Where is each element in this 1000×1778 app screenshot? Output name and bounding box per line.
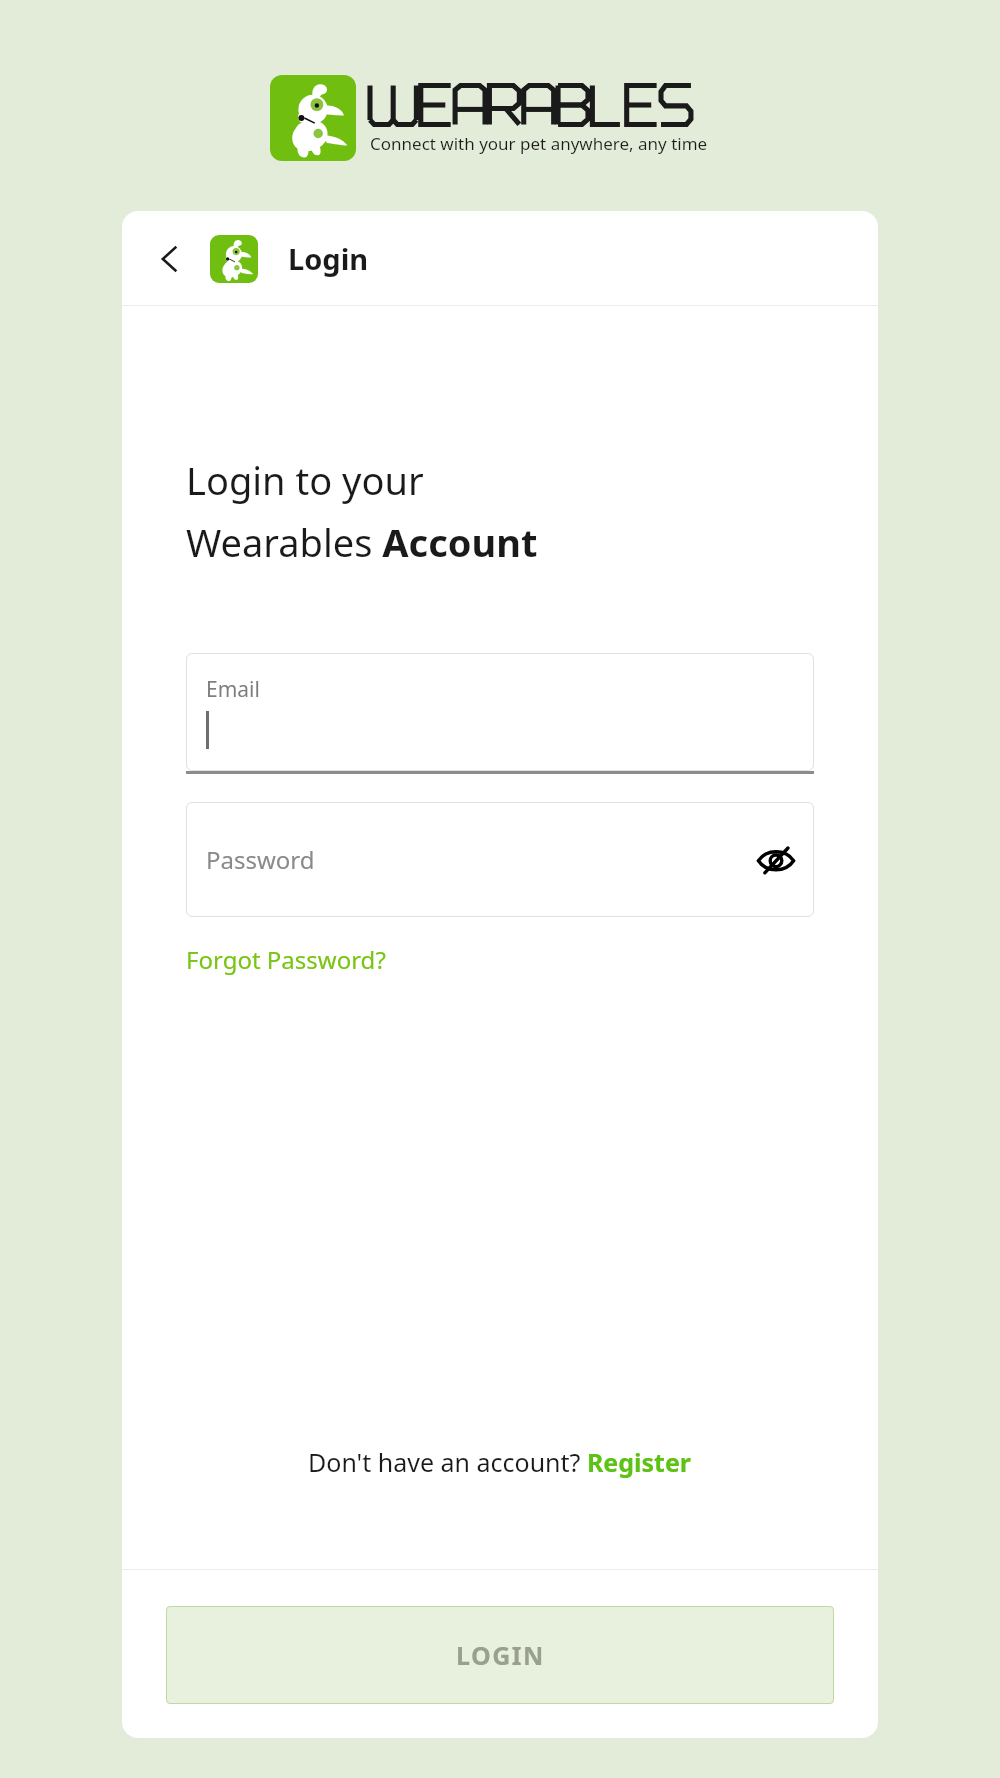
staticText: Email [206,675,260,704]
button[interactable]: LOGIN [166,1606,834,1704]
staticText: Wearables Account [186,516,538,568]
button[interactable]: Forgot Password? [186,939,386,980]
staticText: Don't have an account? Register [308,1445,692,1479]
button[interactable]: Show password [748,832,804,888]
staticText: Login [288,239,369,278]
button[interactable]: Back [148,237,192,281]
button[interactable]: Password [186,802,814,917]
staticText: Connect with your pet anywhere, any time [370,132,708,155]
staticText: Forgot Password? [186,943,386,976]
staticText: Login to your [186,454,424,506]
button[interactable]: Don't have an account? Register [186,1445,814,1479]
staticText: LOGIN [456,1638,545,1672]
button[interactable]: Email [186,653,814,774]
staticText: Password [206,843,315,876]
